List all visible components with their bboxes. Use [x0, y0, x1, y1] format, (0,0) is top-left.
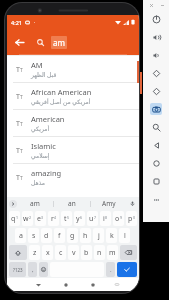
staticText: 4:21 — [11, 19, 22, 26]
button[interactable]: Backspace — [120, 245, 137, 260]
button[interactable]: Home — [143, 154, 169, 172]
staticText: t — [64, 214, 67, 224]
button[interactable]: Power — [143, 10, 169, 28]
button[interactable]: Volume down — [143, 46, 169, 64]
button[interactable]: h — [80, 228, 91, 243]
button[interactable]: T — [7, 56, 139, 82]
button[interactable]: c — [55, 245, 66, 260]
button[interactable]: Minimize — [159, 2, 165, 8]
staticText: n — [97, 248, 102, 258]
button[interactable]: w — [22, 211, 33, 226]
button[interactable]: T — [7, 137, 139, 163]
staticText: 3 — [41, 215, 44, 220]
button[interactable]: Expand suggestions — [9, 200, 17, 208]
button[interactable]: m — [107, 245, 118, 260]
button[interactable]: Back — [25, 278, 52, 291]
staticText: p — [128, 214, 133, 224]
button[interactable]: . — [106, 262, 115, 277]
staticText: 8 — [105, 215, 108, 220]
button[interactable]: Rotate right — [143, 82, 169, 100]
staticText: قبل الظهر — [31, 71, 57, 79]
staticText: T — [16, 92, 20, 101]
button[interactable]: Recent apps — [79, 278, 106, 291]
button[interactable]: T — [7, 164, 139, 190]
button[interactable]: Back — [143, 136, 169, 154]
staticText: a — [19, 231, 23, 241]
staticText: m — [109, 248, 116, 258]
staticText: أمريكي — [31, 125, 50, 132]
staticText: Islamic — [31, 141, 56, 151]
button[interactable]: Enter — [117, 262, 137, 277]
staticText: T — [16, 65, 20, 74]
staticText: j — [98, 231, 100, 241]
button[interactable]: T — [7, 110, 139, 136]
staticText: 2 — [29, 215, 32, 220]
button[interactable]: y — [74, 211, 85, 226]
staticText: T — [16, 146, 20, 155]
staticText: am — [30, 199, 40, 208]
button[interactable]: Shift — [9, 245, 27, 260]
staticText: 9 — [120, 215, 123, 220]
button[interactable]: j — [93, 228, 104, 243]
button[interactable]: e — [35, 211, 46, 226]
button[interactable]: Home — [52, 278, 79, 291]
staticText: T — [20, 67, 23, 74]
staticText: Amy — [102, 199, 116, 208]
button[interactable]: Overview — [143, 172, 169, 190]
staticText: v — [72, 248, 76, 258]
button[interactable]: Voice input — [127, 197, 137, 210]
button[interactable]: Back — [7, 30, 31, 54]
staticText: T — [20, 148, 23, 155]
button[interactable]: , — [28, 262, 37, 277]
button[interactable]: b — [81, 245, 92, 260]
staticText: f — [58, 231, 61, 241]
staticText: d — [44, 231, 49, 241]
button[interactable]: d — [41, 228, 52, 243]
button[interactable]: f — [54, 228, 65, 243]
button[interactable]: Take screenshot — [143, 100, 169, 118]
button[interactable]: Volume up — [143, 28, 169, 46]
button[interactable]: Close — [148, 2, 154, 8]
button[interactable]: Emoji — [39, 262, 48, 277]
button[interactable]: T — [7, 83, 139, 109]
staticText: 4 — [54, 215, 57, 220]
staticText: amazing — [31, 168, 62, 178]
staticText: 7 — [94, 215, 97, 220]
button[interactable]: q — [9, 211, 20, 226]
button[interactable]: an — [54, 197, 90, 210]
button[interactable]: More — [143, 190, 169, 208]
staticText: إسلامي — [31, 152, 50, 159]
button[interactable]: l — [119, 228, 130, 243]
button[interactable]: ?123 — [9, 262, 26, 277]
button[interactable]: u — [87, 211, 98, 226]
button[interactable]: s — [28, 228, 39, 243]
button[interactable]: Search — [31, 33, 49, 51]
button[interactable]: x — [42, 245, 53, 260]
button[interactable]: t — [61, 211, 72, 226]
button[interactable]: n — [94, 245, 105, 260]
button[interactable]: g — [67, 228, 78, 243]
button[interactable]: am — [53, 37, 65, 48]
button[interactable]: Amy — [91, 197, 127, 210]
button[interactable]: am — [17, 197, 53, 210]
button[interactable]: z — [29, 245, 40, 260]
button[interactable]: a — [15, 228, 26, 243]
staticText: 0 — [133, 215, 136, 220]
staticText: i — [103, 214, 105, 224]
staticText: , — [32, 266, 34, 274]
staticText: c — [59, 248, 63, 258]
button[interactable]: k — [106, 228, 117, 243]
button[interactable]: Zoom — [143, 118, 169, 136]
button[interactable]: Rotate left — [143, 64, 169, 82]
staticText: T — [20, 94, 23, 101]
staticText: African American — [31, 87, 92, 97]
button[interactable]: o — [113, 211, 124, 226]
button[interactable]: i — [100, 211, 111, 226]
button[interactable]: v — [68, 245, 79, 260]
button[interactable]: r — [48, 211, 59, 226]
button[interactable]: p — [126, 211, 137, 226]
staticText: z — [33, 248, 37, 258]
button[interactable]: Switch keyboard — [106, 278, 128, 291]
staticText: b — [84, 248, 89, 258]
